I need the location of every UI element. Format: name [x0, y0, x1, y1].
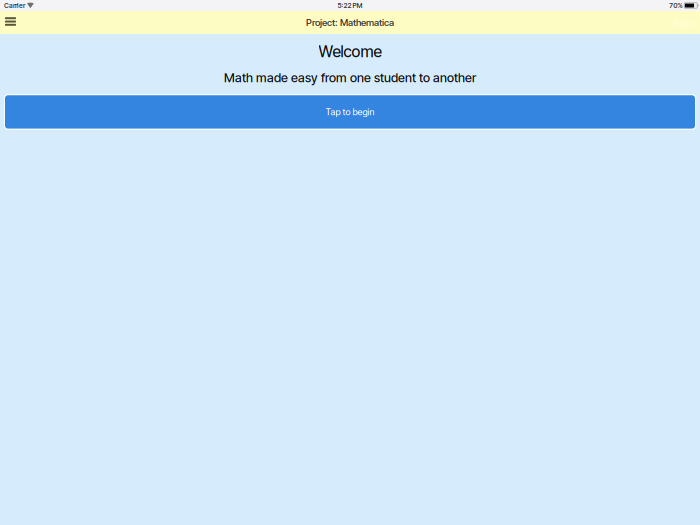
staticText: Back [673, 17, 694, 29]
button[interactable]: Back [673, 11, 700, 34]
staticText: Carrier [4, 1, 25, 10]
staticText: 5:22 PM [337, 1, 362, 10]
button[interactable]: Menu [0, 11, 24, 34]
staticText: Tap to begin [325, 106, 374, 117]
staticText: Project: Mathematica [306, 17, 394, 28]
staticText: Math made easy from one student to anoth… [224, 70, 476, 85]
staticText: 70% [669, 1, 682, 10]
staticText: Welcome [318, 42, 381, 61]
button[interactable]: Tap to begin [5, 95, 695, 129]
